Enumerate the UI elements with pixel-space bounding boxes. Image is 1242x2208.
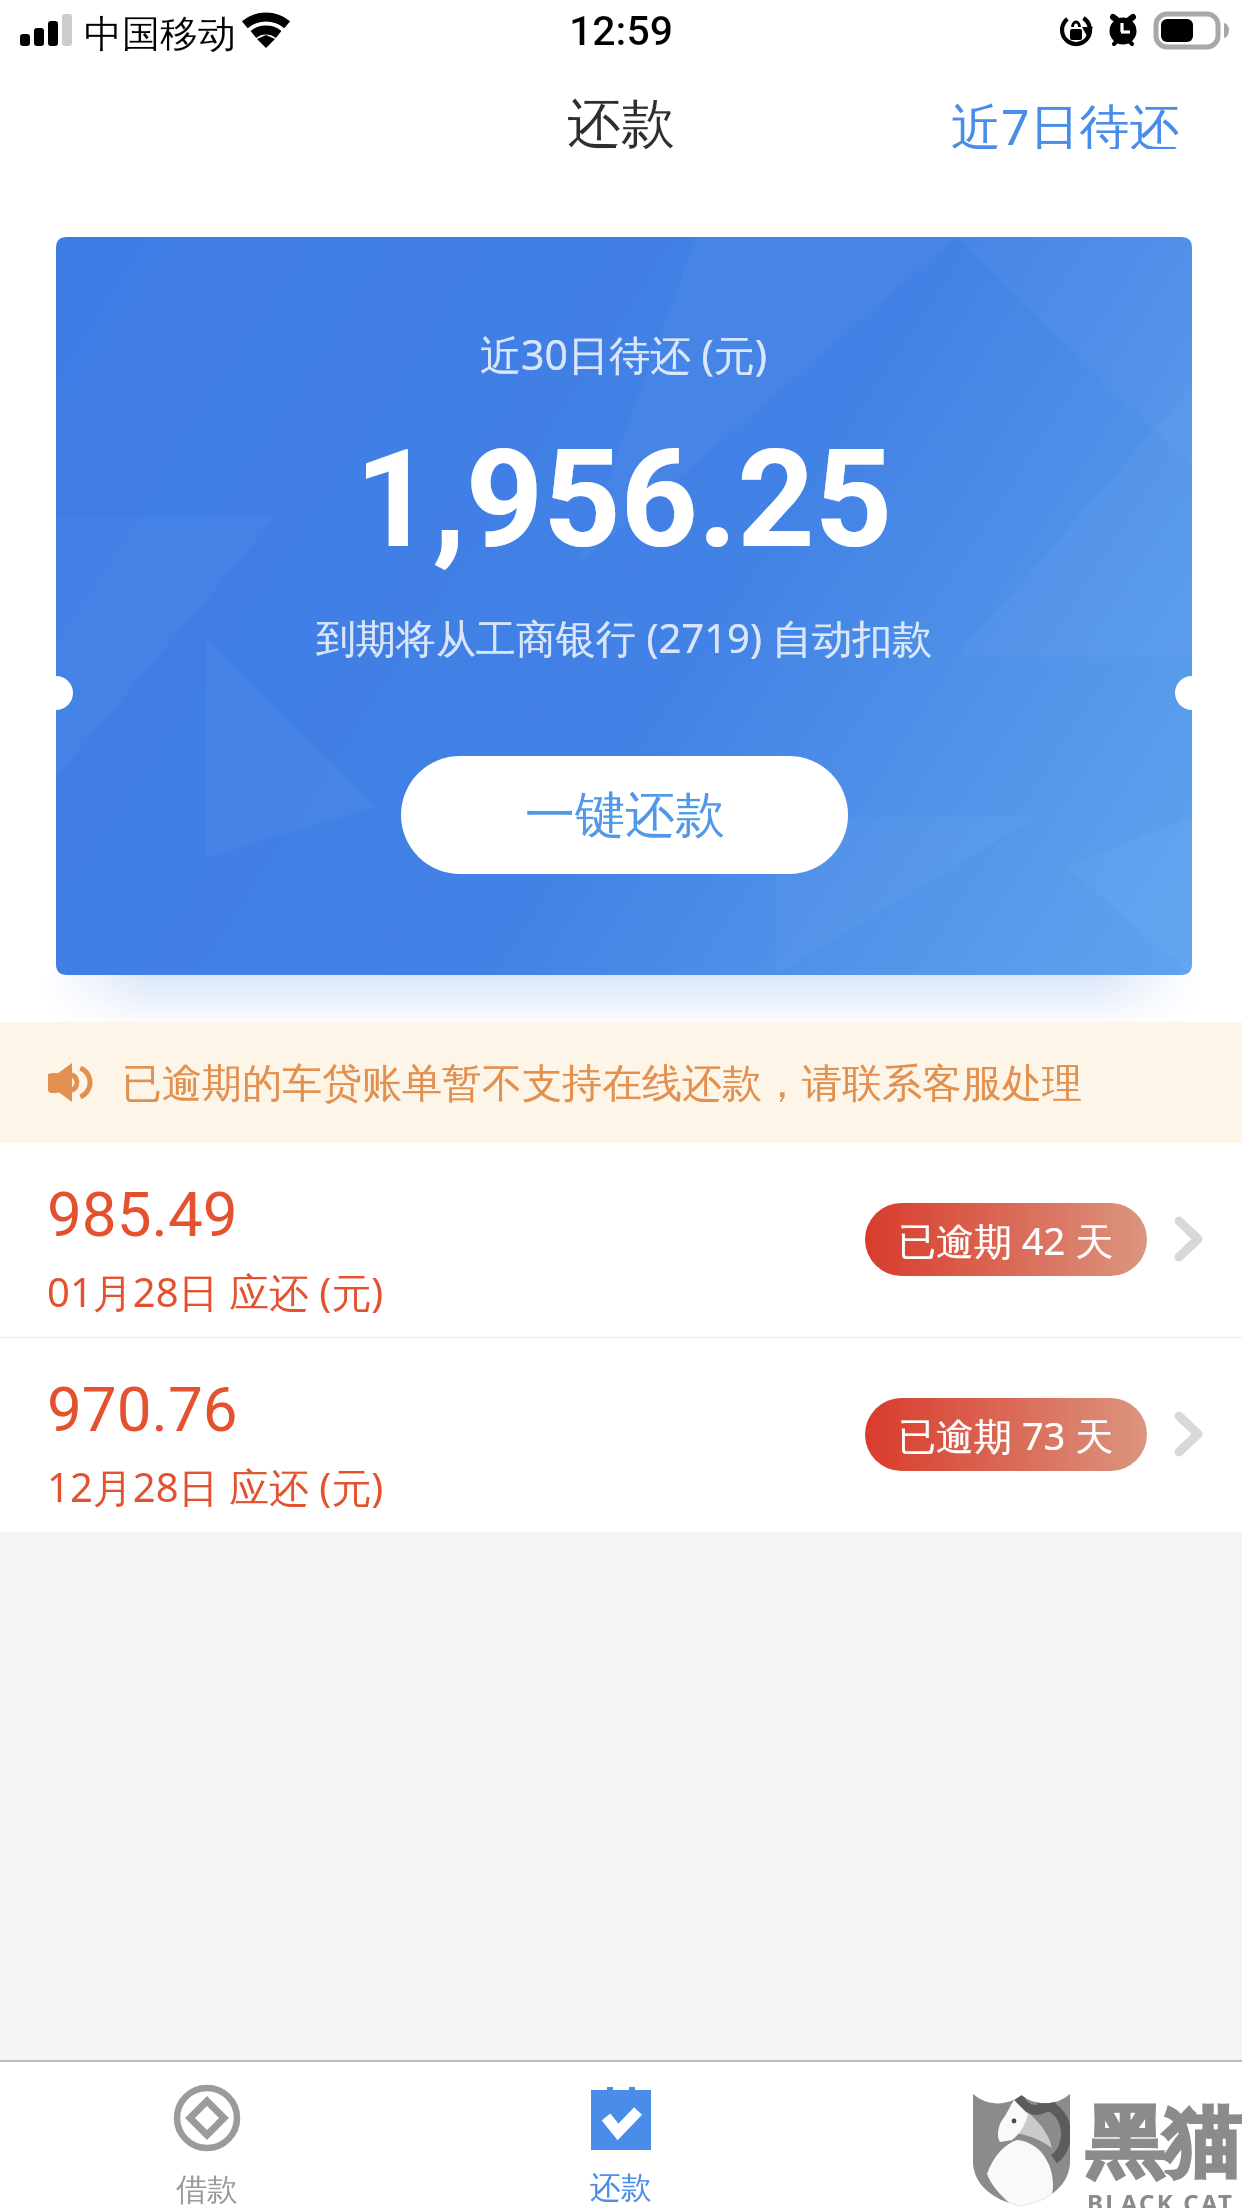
button[interactable]: 借款 (0, 2062, 414, 2208)
staticText: 已逾期 73 天 (898, 1409, 1114, 1461)
staticText: 1,956.25 (355, 421, 893, 579)
button[interactable]: 还款 (414, 2062, 828, 2208)
staticText: 已逾期的车贷账单暂不支持在线还款，请联系客服处理 (122, 1058, 1082, 1108)
staticText: 已逾期 42 天 (898, 1214, 1114, 1266)
staticText: 还款 (590, 2168, 652, 2207)
staticText: 黑猫 (1085, 2094, 1241, 2192)
staticText: 到期将从工商银行 (2719) 自动扣款 (316, 610, 933, 665)
button[interactable]: 970.76 (0, 1338, 1242, 1532)
staticText: 01月28日 应还 (元) (47, 1264, 384, 1319)
staticText: 近30日待还 (元) (480, 326, 768, 382)
staticText: 一键还款 (525, 784, 725, 847)
button[interactable]: 近30日待还 (元) (56, 237, 1192, 975)
staticText: 12月28日 应还 (元) (47, 1459, 384, 1514)
staticText: 985.49 (47, 1178, 238, 1251)
staticText: BLACK CAT (1087, 2186, 1235, 2208)
staticText: 中国移动 (84, 10, 236, 58)
button[interactable]: 我 (828, 2062, 1242, 2208)
button[interactable]: 一键还款 (401, 756, 848, 874)
staticText: 970.76 (47, 1373, 238, 1446)
staticText: 还款 (567, 90, 675, 158)
staticText: 近7日待还 (951, 92, 1180, 149)
button[interactable]: 985.49 (0, 1143, 1242, 1337)
button[interactable]: 已逾期的车贷账单暂不支持在线还款，请联系客服处理 (0, 1022, 1242, 1143)
button[interactable]: 近7日待还 (911, 70, 1242, 171)
staticText: 借款 (176, 2170, 238, 2208)
staticText: 12:59 (569, 7, 674, 55)
